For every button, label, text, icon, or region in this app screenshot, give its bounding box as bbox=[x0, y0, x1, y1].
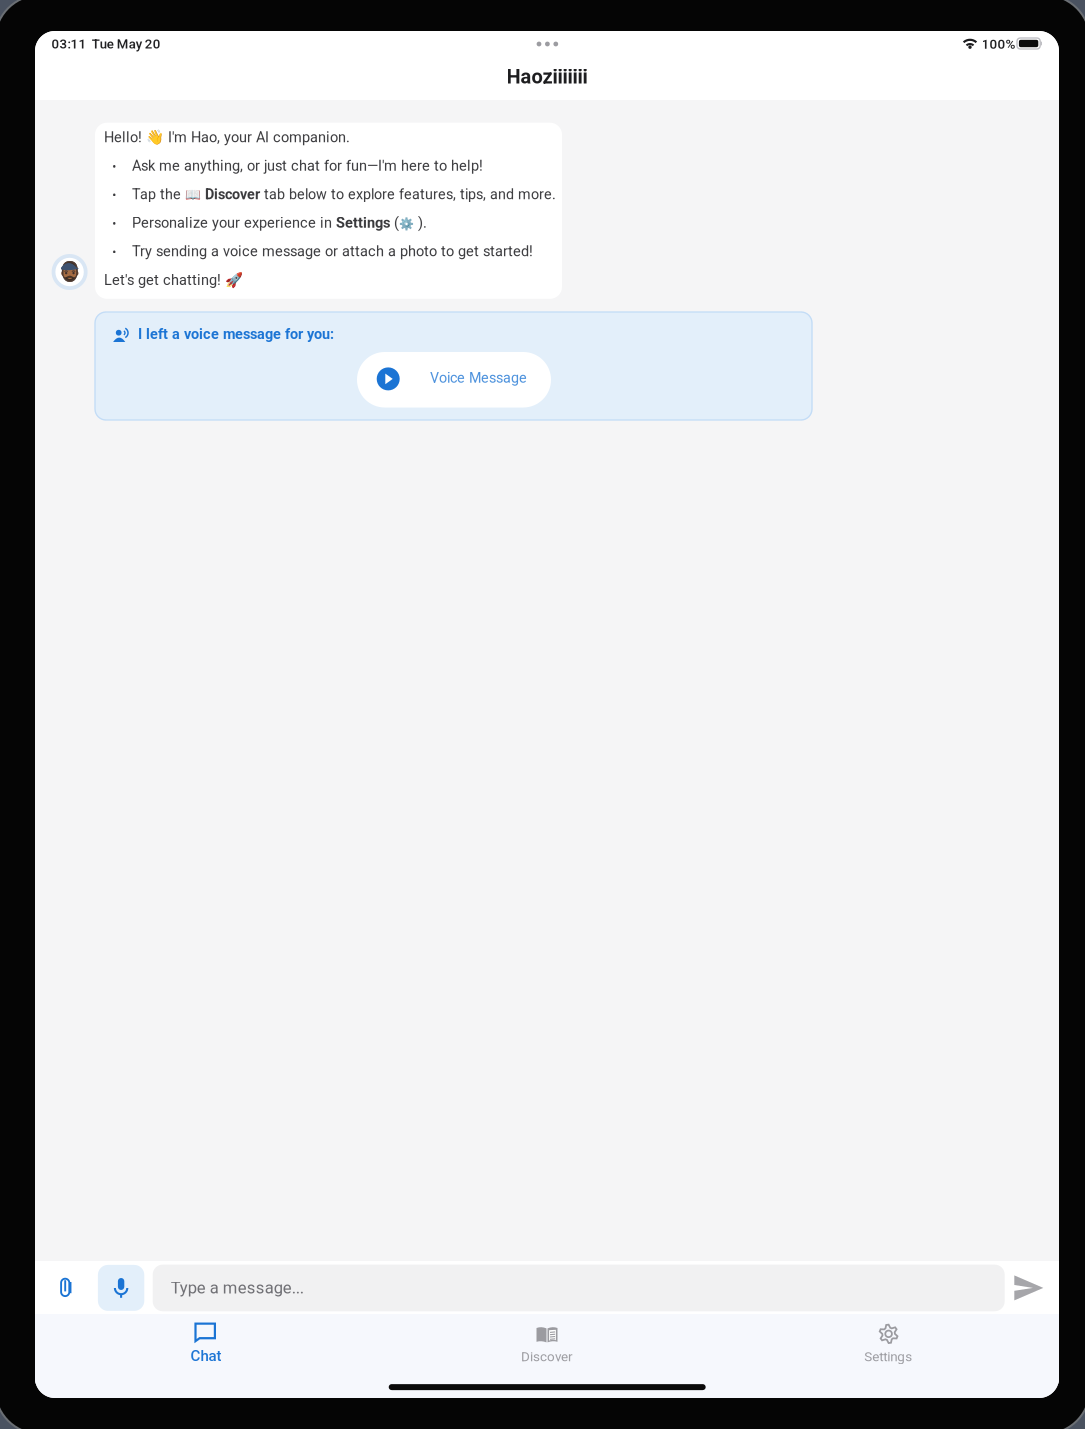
staticText: Try sending a voice message or attach a … bbox=[132, 243, 533, 260]
staticText: Discover bbox=[205, 186, 260, 203]
staticText: Chat bbox=[190, 1347, 221, 1365]
staticText: Settings bbox=[864, 1349, 912, 1365]
staticText: 03:11 bbox=[52, 36, 87, 52]
button[interactable]: Attach file bbox=[48, 1265, 84, 1311]
staticText: • bbox=[112, 160, 116, 174]
staticText: 👋 bbox=[146, 129, 164, 146]
button[interactable]: Record voice message bbox=[98, 1265, 144, 1311]
staticText: Ask me anything, or just chat for fun—I'… bbox=[132, 157, 483, 174]
staticText: ( bbox=[390, 214, 399, 231]
staticText: ⚙️ bbox=[399, 217, 414, 231]
staticText: • bbox=[112, 217, 116, 231]
staticText: Haoziiiiiii bbox=[506, 65, 587, 88]
staticText: • bbox=[112, 245, 116, 259]
staticText: tab below to explore features, tips, and… bbox=[260, 186, 556, 203]
staticText: Voice Message bbox=[430, 369, 527, 386]
button[interactable]: Discover bbox=[376, 1314, 718, 1384]
staticText: Tap the bbox=[132, 186, 185, 203]
button[interactable]: Send bbox=[1009, 1265, 1049, 1311]
staticText: Let's get chatting! bbox=[104, 271, 225, 288]
staticText: I'm Hao, your AI companion. bbox=[164, 129, 350, 146]
staticText: I left a voice message for you: bbox=[138, 326, 334, 342]
button[interactable]: Chat bbox=[35, 1314, 376, 1384]
staticText: Personalize your experience in bbox=[132, 214, 336, 231]
staticText: Type a message... bbox=[171, 1278, 304, 1298]
staticText: Discover bbox=[521, 1349, 573, 1365]
staticText: Settings bbox=[336, 214, 390, 231]
staticText: 100% bbox=[982, 36, 1016, 52]
button[interactable]: Type a message... bbox=[153, 1265, 1005, 1311]
staticText: Tue May 20 bbox=[92, 36, 161, 52]
button[interactable]: Settings bbox=[718, 1314, 1059, 1384]
staticText: 📖 bbox=[185, 187, 201, 202]
staticText: 🧔🏾‍♂️ bbox=[58, 260, 82, 282]
button[interactable]: Voice Message bbox=[357, 352, 551, 407]
staticText: • bbox=[112, 188, 116, 202]
staticText: Hello! bbox=[104, 129, 146, 146]
staticText: ). bbox=[414, 214, 427, 231]
staticText: 🚀 bbox=[225, 271, 243, 288]
